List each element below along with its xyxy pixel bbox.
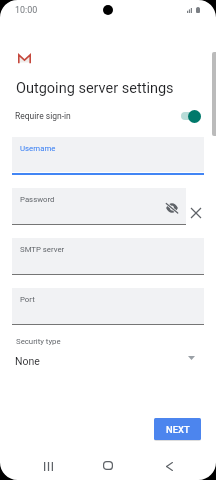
staticText: NEXT <box>166 424 190 435</box>
staticText: Port <box>20 295 35 304</box>
button[interactable]: Password <box>12 188 186 225</box>
button[interactable]: Home <box>94 451 122 479</box>
staticText: Outgoing server settings <box>16 80 174 97</box>
staticText: Require sign-in <box>15 111 71 121</box>
button[interactable]: SMTP server <box>12 238 204 277</box>
button[interactable]: Security type <box>0 334 216 370</box>
staticText: Username <box>20 144 56 153</box>
button[interactable]: Require sign-in <box>0 105 216 126</box>
button[interactable]: Show password <box>164 200 179 215</box>
staticText: 10:00 <box>15 5 38 15</box>
staticText: SMTP server <box>20 245 65 254</box>
button[interactable]: NEXT <box>154 418 201 440</box>
button[interactable]: Port <box>12 288 204 327</box>
staticText: Password <box>20 195 55 204</box>
button[interactable]: Username <box>12 137 204 175</box>
staticText: None <box>15 355 40 367</box>
staticText: Security type <box>16 337 61 346</box>
button[interactable]: Back <box>155 452 183 480</box>
button[interactable]: Require sign-in <box>177 108 201 124</box>
button[interactable]: Recent apps <box>34 452 62 480</box>
button[interactable]: Clear <box>186 203 205 222</box>
